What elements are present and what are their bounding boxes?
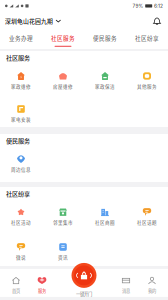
staticText: 社区商圈 [95,219,115,226]
button[interactable]: 首页 [0,275,32,296]
staticText: 79% [132,3,143,9]
button[interactable]: 社区活动 [0,208,42,229]
staticText: 社区活动 [11,219,31,226]
staticText: 家政维修 [11,83,31,90]
staticText: 其他服务 [137,83,157,90]
staticText: 周边信息 [11,166,31,173]
button[interactable]: 家政维修 [0,72,42,93]
staticText: 房屋维修 [53,83,73,90]
button[interactable]: 周边信息 [0,155,42,176]
button[interactable]: 邻里集市 [42,208,84,229]
button[interactable]: 我的 [135,275,168,296]
staticText: 我的 [148,288,156,294]
button[interactable]: 消息 [109,275,142,296]
staticText: 邻里集市 [53,219,73,226]
button[interactable]: 便民服务 [84,30,126,49]
button[interactable]: 社区服务 [42,30,84,49]
staticText: 服务 [38,288,46,294]
button[interactable]: Notifications [150,14,164,28]
staticText: 首页 [12,288,20,294]
button[interactable]: 家政保洁 [84,72,126,93]
button[interactable]: 社区话题 [126,208,168,229]
button[interactable]: 社区商圈 [84,208,126,229]
button[interactable]: 资讯 [42,243,84,264]
staticText: 资讯 [58,254,68,261]
staticText: 社区纷享 [135,34,159,42]
button[interactable]: 其他服务 [126,72,168,93]
staticText: 社区服务 [6,53,30,62]
staticText: 6:12 [154,3,163,9]
button[interactable]: 家电安装 [0,105,42,126]
button[interactable]: 服务 [25,275,58,296]
staticText: 深圳龟山花园九期 [5,17,53,25]
staticText: 一键开门 [76,291,92,297]
staticText: 微说 [16,254,26,261]
staticText: 社区话题 [137,219,157,226]
staticText: 便民服务 [93,34,117,42]
button[interactable]: 微说 [0,243,42,264]
button[interactable]: 社区纷享 [126,30,168,49]
staticText: 便民服务 [6,136,30,145]
staticText: 消息 [122,288,130,294]
staticText: 社区服务 [51,34,75,42]
button[interactable]: 业务办理 [0,30,42,49]
button[interactable]: 房屋维修 [42,72,84,93]
staticText: 社区纷享 [6,189,30,198]
staticText: 业务办理 [9,34,33,42]
staticText: 家电安装 [11,116,31,123]
button[interactable]: 一键开门 [64,263,104,297]
staticText: 家政保洁 [95,83,115,90]
